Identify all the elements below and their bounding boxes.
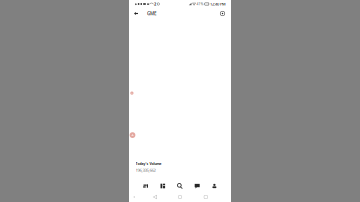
staticText: Today's Volume <box>135 161 161 166</box>
button[interactable]: Account <box>206 180 223 192</box>
button[interactable]: Markets <box>137 180 154 192</box>
button[interactable]: Home <box>170 192 189 201</box>
button[interactable]: GME <box>141 8 157 19</box>
button[interactable]: More options <box>217 8 228 19</box>
button[interactable]: Back <box>131 8 141 19</box>
staticText: 41% <box>197 2 204 6</box>
staticText: 2 <box>154 1 156 7</box>
button[interactable]: Watchlist <box>154 180 171 192</box>
button[interactable]: Messages <box>189 180 206 192</box>
button[interactable]: Search <box>171 180 189 192</box>
button[interactable]: Recent apps <box>189 192 222 201</box>
staticText: 196,335,662 <box>135 167 155 173</box>
button[interactable]: Back <box>139 192 170 201</box>
staticText: GME <box>147 10 157 17</box>
staticText: 12:40 PM <box>210 1 226 7</box>
